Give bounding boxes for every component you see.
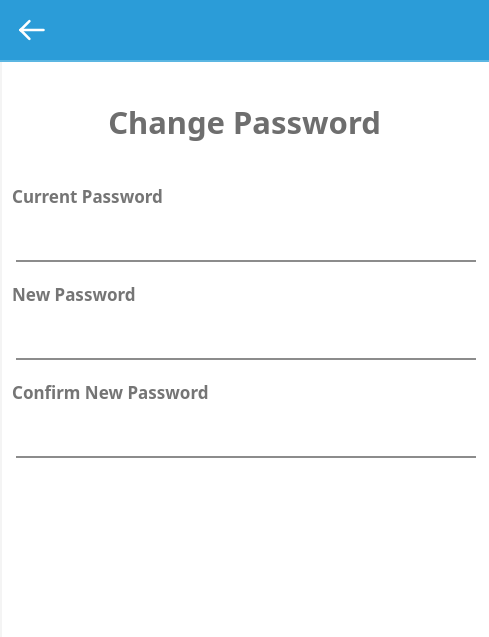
button[interactable]: Back [8, 6, 56, 54]
button[interactable]: Confirm New Password [0, 381, 489, 479]
staticText: Confirm New Password [12, 381, 209, 404]
staticText: New Password [12, 283, 136, 306]
button[interactable]: Current Password [0, 185, 489, 283]
button[interactable]: New Password [0, 283, 489, 381]
staticText: Change Password [0, 101, 489, 143]
staticText: Current Password [12, 185, 163, 208]
